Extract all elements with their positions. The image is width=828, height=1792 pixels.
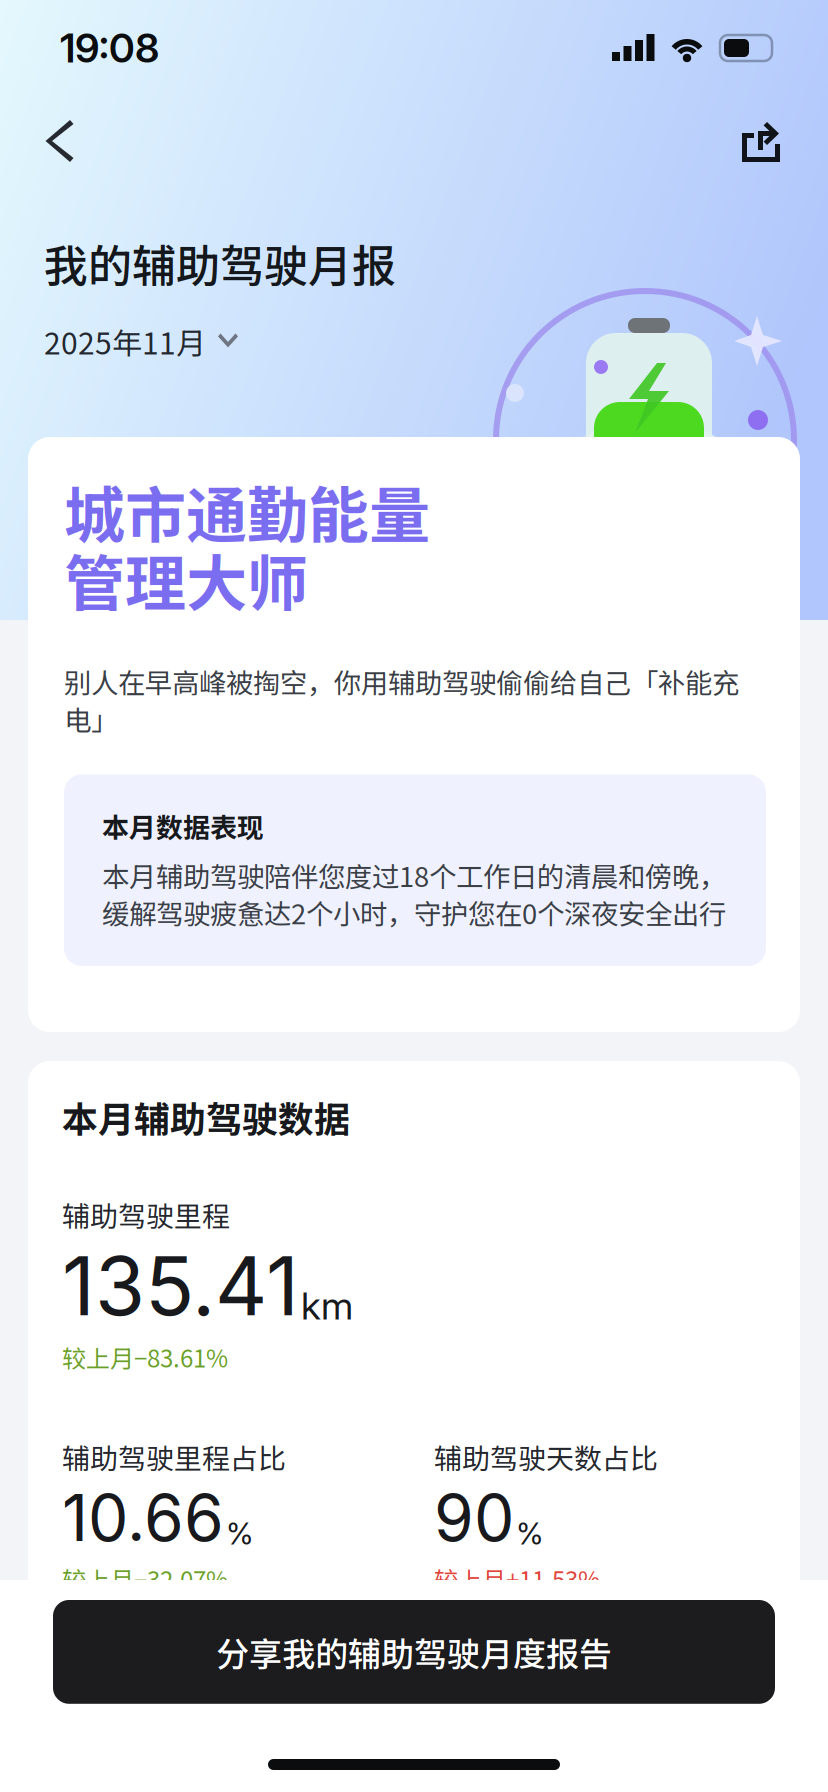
staticText: 较上月+11.53% — [434, 1561, 600, 1596]
staticText: 城市通勤能量 管理大师 — [64, 467, 430, 624]
button[interactable]: Back — [52, 112, 116, 174]
staticText: km — [301, 1283, 353, 1329]
staticText: 辅助驾驶里程占比 — [62, 1436, 286, 1477]
staticText: 10.66 — [62, 1479, 224, 1556]
button[interactable]: 分享我的辅助驾驶月度报告 — [53, 1600, 775, 1704]
staticText: 较上月−83.61% — [62, 1340, 228, 1374]
staticText: 90 — [434, 1479, 514, 1556]
staticText: 本月数据表现 — [102, 806, 264, 845]
staticText: % — [226, 1515, 254, 1552]
staticText: 较上月−32.07% — [62, 1561, 228, 1596]
staticText: 分享我的辅助驾驶月度报告 — [216, 1628, 612, 1676]
staticText: 辅助驾驶里程 — [62, 1194, 230, 1235]
staticText: % — [516, 1515, 544, 1552]
button[interactable]: Share — [716, 112, 780, 174]
staticText: 本月辅助驾驶陪伴您度过18个工作日的清晨和傍晚，缓解驾驶疲惫达2个小时，守护您在… — [102, 855, 726, 932]
staticText: 本月辅助驾驶数据 — [62, 1091, 350, 1143]
staticText: 别人在早高峰被掏空，你用辅助驾驶偷偷给自己「补能充电」 — [64, 662, 739, 738]
staticText: 2025年11月 — [44, 320, 206, 363]
staticText: 19:08 — [60, 24, 159, 72]
staticText: 辅助驾驶天数占比 — [434, 1436, 658, 1477]
staticText: 135.41 — [62, 1237, 299, 1335]
staticText: 我的辅助驾驶月报 — [44, 231, 396, 295]
